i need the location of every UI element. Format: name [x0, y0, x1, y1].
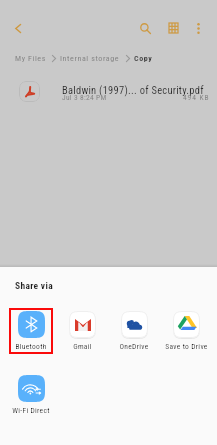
- staticText: OneDrive: [119, 342, 149, 351]
- staticText: Jul 3 8:24 PM: [62, 93, 107, 102]
- button[interactable]: Gmail: [60, 308, 104, 354]
- button[interactable]: Search: [131, 14, 159, 42]
- staticText: Wi-Fi Direct: [12, 406, 50, 415]
- button[interactable]: Navigate up: [4, 14, 32, 42]
- button[interactable]: Wi-Fi Direct: [9, 372, 53, 418]
- staticText: Baldwin (1997)... of Security.pdf: [62, 84, 204, 96]
- staticText: Copy: [134, 54, 153, 63]
- button[interactable]: OneDrive: [112, 308, 156, 354]
- staticText: Bluetooth: [15, 342, 47, 351]
- staticText: My Files: [15, 54, 46, 63]
- button[interactable]: More options: [184, 14, 212, 42]
- staticText: Share via: [15, 280, 53, 291]
- button[interactable]: Save to Drive: [164, 308, 208, 354]
- staticText: Save to Drive: [165, 342, 208, 351]
- button[interactable]: Change view: [159, 14, 187, 42]
- staticText: Internal storage: [60, 54, 120, 63]
- staticText: 494 KB: [183, 93, 210, 102]
- button[interactable]: Bluetooth: [9, 308, 53, 354]
- staticText: Gmail: [73, 342, 92, 351]
- button[interactable]: Baldwin (1997)... of Security.pdf: [0, 70, 217, 112]
